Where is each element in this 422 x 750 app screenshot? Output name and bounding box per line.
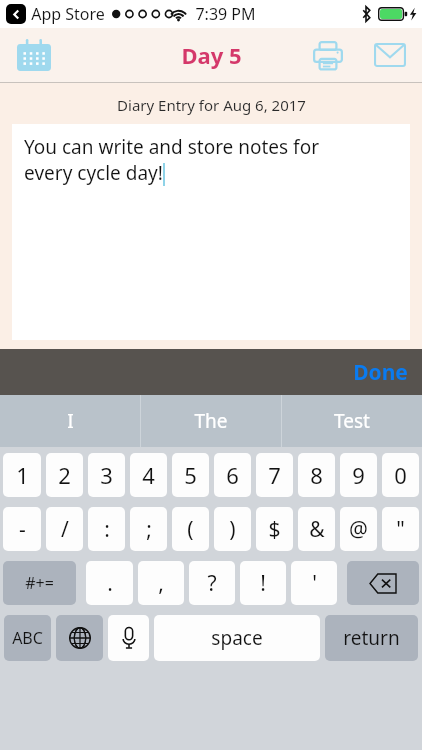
staticText: 4 [142, 460, 155, 490]
button[interactable]: ' [291, 561, 337, 605]
staticText: 7:39 PM [195, 3, 256, 25]
staticText: 8 [310, 460, 323, 490]
staticText: The [194, 408, 228, 434]
button[interactable]: 1 [3, 453, 41, 497]
button[interactable]: The [141, 395, 281, 447]
staticText: I [67, 408, 74, 434]
button[interactable]: 7 [256, 453, 293, 497]
button[interactable]: - [3, 507, 41, 551]
button[interactable]: Print [306, 33, 350, 77]
button[interactable]: 6 [214, 453, 251, 497]
staticText: ABC [12, 627, 43, 649]
button[interactable]: ; [130, 507, 167, 551]
button[interactable]: 8 [298, 453, 335, 497]
staticText: ) [229, 515, 236, 544]
staticText: , [158, 569, 164, 598]
staticText: You can write and store notes for [24, 134, 319, 160]
button[interactable]: ? [189, 561, 235, 605]
staticText: ! [260, 569, 266, 598]
button[interactable]: 5 [172, 453, 209, 497]
button[interactable]: Back to App Store [6, 4, 26, 24]
button[interactable]: Dictation [108, 615, 149, 661]
staticText: 5 [184, 460, 197, 490]
staticText: @ [349, 515, 368, 544]
button[interactable]: 0 [382, 453, 419, 497]
staticText: 0 [394, 460, 407, 490]
button[interactable]: 9 [340, 453, 377, 497]
staticText: ; [146, 515, 152, 544]
button[interactable]: Switch keyboard [56, 615, 103, 661]
button[interactable]: ) [214, 507, 251, 551]
button[interactable]: " [382, 507, 419, 551]
button[interactable]: @ [340, 507, 377, 551]
button[interactable]: Email [368, 33, 412, 77]
button[interactable]: ABC [4, 615, 51, 661]
button[interactable]: ! [240, 561, 286, 605]
staticText: return [343, 625, 400, 651]
button[interactable]: & [298, 507, 335, 551]
staticText: Diary Entry for Aug 6, 2017 [117, 95, 306, 115]
staticText: #+= [25, 572, 54, 594]
button[interactable]: Test [282, 395, 422, 447]
button[interactable]: You can write and store notes for [12, 124, 410, 340]
staticText: ( [187, 515, 194, 544]
staticText: " [396, 515, 405, 544]
staticText: Test [334, 408, 370, 434]
staticText: space [211, 625, 263, 651]
button[interactable]: Calendar [12, 33, 56, 77]
staticText: Day 5 [181, 40, 242, 70]
button[interactable]: . [86, 561, 133, 605]
staticText: Done [353, 358, 408, 387]
staticText: 1 [16, 460, 29, 490]
button[interactable]: return [325, 615, 418, 661]
button[interactable]: space [154, 615, 320, 661]
button[interactable]: 4 [130, 453, 167, 497]
staticText: every cycle day! [24, 160, 163, 186]
staticText: 6 [226, 460, 239, 490]
button[interactable]: Backspace [347, 561, 419, 605]
staticText: & [309, 515, 325, 544]
button[interactable]: #+= [3, 561, 76, 605]
button[interactable]: $ [256, 507, 293, 551]
button[interactable]: ( [172, 507, 209, 551]
button[interactable]: Done [353, 358, 408, 387]
staticText: / [61, 515, 69, 544]
button[interactable]: , [138, 561, 184, 605]
button[interactable]: / [46, 507, 83, 551]
staticText: 2 [58, 460, 71, 490]
staticText: App Store [31, 3, 105, 25]
button[interactable]: 3 [88, 453, 125, 497]
staticText: ? [207, 569, 217, 598]
staticText: - [19, 515, 26, 544]
staticText: 7 [268, 460, 281, 490]
staticText: . [107, 569, 113, 598]
staticText: ' [312, 569, 317, 598]
staticText: 3 [100, 460, 113, 490]
staticText: $ [268, 515, 281, 544]
button[interactable]: : [88, 507, 125, 551]
staticText: 9 [352, 460, 365, 490]
button[interactable]: I [0, 395, 140, 447]
staticText: : [104, 515, 110, 544]
button[interactable]: 2 [46, 453, 83, 497]
